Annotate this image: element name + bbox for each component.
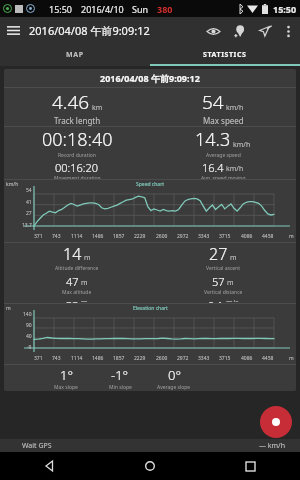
staticText: 57 [212,274,225,289]
staticText: 15:50 [273,3,297,15]
staticText: 2972 [177,355,189,362]
button[interactable]: 54 [150,88,296,126]
staticText: Avg. speed moving [201,175,246,179]
staticText: Vertical distance [204,289,243,296]
staticText: Movement duration [54,175,101,179]
staticText: m [230,253,237,263]
staticText: Average speed [206,152,241,159]
staticText: 1114 [71,355,83,362]
staticText: 1114 [71,233,83,240]
staticText: 380 [157,3,173,15]
staticText: 3715 [219,233,231,240]
staticText: 0° [168,366,181,384]
staticText: 1857 [113,355,125,362]
button[interactable]: Add waypoint [226,18,252,44]
button[interactable]: Elevation chart [4,304,296,364]
staticText: 371 [34,355,43,362]
staticText: m [289,355,294,362]
staticText: Max speed [203,115,244,126]
staticText: Min slope [109,384,132,391]
staticText: m [81,298,88,302]
staticText: 2972 [177,233,189,240]
staticText: 14 [63,243,82,265]
staticText: 2016/04/08 午前9:09:12 [29,23,150,38]
staticText: 4086 [241,355,253,362]
staticText: Average slope [157,384,191,391]
button[interactable]: 1° [39,365,93,391]
staticText: Speed chart [136,181,165,188]
staticText: m [227,278,234,288]
staticText: 54 [202,89,224,115]
button[interactable]: Home [100,452,200,480]
staticText: m [84,253,91,263]
staticText: Max slope [54,384,78,391]
staticText: 371 [34,233,43,240]
button[interactable]: Speed chart [4,180,296,242]
button[interactable]: MAP [0,44,150,66]
staticText: km [92,103,103,113]
button[interactable]: 0° [147,365,201,391]
staticText: km/h [233,140,251,150]
button[interactable]: 14.3 [150,127,296,179]
staticText: Track length [54,115,101,126]
staticText: 0.1 [208,298,224,303]
staticText: STATISTICS [203,50,247,60]
staticText: 1857 [113,233,125,240]
button[interactable]: Recents [200,452,300,480]
button[interactable]: STATISTICS [150,44,300,66]
button[interactable]: 4.46 [4,88,150,126]
button[interactable]: Show [200,18,226,44]
staticText: 1486 [92,355,104,362]
staticText: 4458 [262,233,274,240]
staticText: Sun [132,3,149,15]
staticText: 33 [66,298,79,303]
button[interactable]: Record [260,406,292,438]
staticText: 2600 [156,233,168,240]
staticText: km/h [226,103,244,113]
button[interactable]: 27 [150,243,296,303]
staticText: km/h [226,164,244,174]
staticText: 2016/04/08 午前9:09:12 [100,72,200,84]
staticText: 4.46 [52,89,90,115]
staticText: 3343 [198,233,210,240]
staticText: m [6,305,11,312]
button[interactable]: -1° [93,365,147,391]
staticText: 2016/4/10 [81,3,124,15]
staticText: 3343 [198,355,210,362]
staticText: 1° [60,366,73,384]
staticText: 54 [26,187,32,194]
staticText: Vertical ascent [206,265,240,272]
staticText: 2229 [134,233,146,240]
button[interactable]: More options [278,18,298,44]
button[interactable]: Menu [0,17,27,44]
staticText: Record duration [58,152,96,159]
staticText: m/s [226,298,239,302]
staticText: 1486 [92,233,104,240]
staticText: 40 [26,333,32,340]
button[interactable]: 14 [4,243,150,303]
staticText: 743 [52,355,61,362]
button[interactable]: Back [0,452,100,480]
staticText: 140 [23,311,32,318]
staticText: 16.4 [202,160,224,175]
staticText: m [289,233,294,240]
staticText: MAP [66,50,84,60]
staticText: 743 [52,233,61,240]
button[interactable]: 00:18:40 [4,127,150,179]
staticText: 47 [66,274,79,289]
staticText: 2229 [134,355,146,362]
staticText: m [81,278,88,288]
staticText: -9 [27,344,32,351]
staticText: 27 [209,243,228,265]
button[interactable]: Navigate [252,18,278,44]
staticText: 15:50 [49,3,73,15]
staticText: 2600 [156,355,168,362]
staticText: km/h [6,181,19,188]
staticText: 41 [26,199,32,206]
staticText: 4086 [241,233,253,240]
staticText: 3715 [219,355,231,362]
staticText: — km/h [259,441,286,451]
staticText: 14.3 [195,127,231,152]
staticText: 13.7 [22,222,32,229]
staticText: 27 [26,210,32,217]
